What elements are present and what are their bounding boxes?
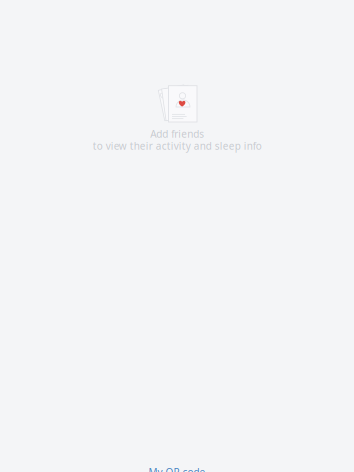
- staticText: My QR code: [148, 465, 205, 472]
- staticText: Add friends to view their activity and s…: [92, 127, 261, 153]
- button[interactable]: My QR code: [148, 465, 205, 472]
